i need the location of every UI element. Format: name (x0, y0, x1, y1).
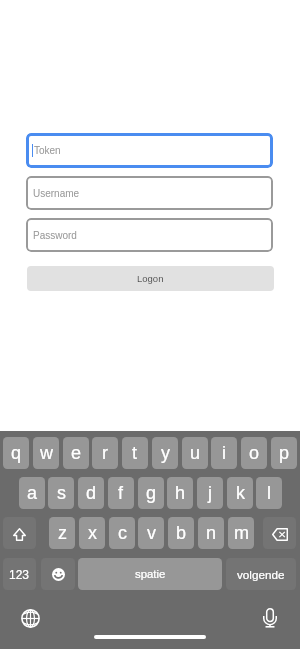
button[interactable]: b (168, 517, 194, 549)
button[interactable]: s (48, 477, 74, 509)
button[interactable]: Token (26, 133, 273, 168)
button[interactable]: y (152, 437, 178, 469)
button[interactable]: a (19, 477, 45, 509)
staticText: f (118, 483, 124, 503)
button[interactable]: Password (26, 218, 273, 252)
staticText: a (27, 483, 38, 503)
button[interactable]: r (92, 437, 118, 469)
staticText: l (267, 483, 271, 503)
staticText: t (132, 443, 138, 463)
button[interactable]: z (49, 517, 75, 549)
button[interactable]: Username (26, 176, 273, 210)
button[interactable]: Emoji (41, 558, 75, 590)
staticText: s (57, 483, 66, 503)
staticText: m (234, 523, 249, 543)
button[interactable]: n (198, 517, 224, 549)
button[interactable]: x (79, 517, 105, 549)
button[interactable]: u (182, 437, 208, 469)
button[interactable]: g (138, 477, 164, 509)
staticText: b (176, 523, 187, 543)
button[interactable]: Backspace (263, 517, 296, 549)
button[interactable]: m (228, 517, 254, 549)
button[interactable]: 123 (3, 558, 36, 590)
staticText: c (118, 523, 127, 543)
button[interactable]: d (78, 477, 104, 509)
button[interactable]: j (197, 477, 223, 509)
button[interactable]: c (109, 517, 135, 549)
button[interactable]: spatie (78, 558, 222, 590)
button[interactable]: h (167, 477, 193, 509)
staticText: i (222, 443, 226, 463)
button[interactable]: Dictate (263, 608, 277, 628)
staticText: z (58, 523, 67, 543)
button[interactable]: o (241, 437, 267, 469)
button[interactable]: p (271, 437, 297, 469)
button[interactable]: volgende (226, 558, 296, 590)
button[interactable]: t (122, 437, 148, 469)
staticText: volgende (237, 568, 285, 581)
staticText: n (206, 523, 217, 543)
staticText: g (146, 483, 157, 503)
staticText: k (236, 483, 245, 503)
staticText: e (71, 443, 82, 463)
staticText: Password (33, 230, 77, 241)
staticText: Token (34, 145, 61, 156)
staticText: x (88, 523, 97, 543)
staticText: v (147, 523, 156, 543)
button[interactable]: Shift (3, 517, 36, 549)
staticText: y (161, 443, 170, 463)
button[interactable]: i (211, 437, 237, 469)
staticText: u (190, 443, 201, 463)
button[interactable]: f (108, 477, 134, 509)
staticText: p (279, 443, 290, 463)
staticText: j (208, 483, 212, 503)
button[interactable]: q (3, 437, 29, 469)
button[interactable]: l (256, 477, 282, 509)
button[interactable]: Logon (27, 266, 274, 291)
button[interactable]: k (227, 477, 253, 509)
staticText: Logon (137, 273, 164, 284)
staticText: r (102, 443, 108, 463)
staticText: h (175, 483, 186, 503)
staticText: q (11, 443, 22, 463)
staticText: Username (33, 188, 80, 199)
staticText: spatie (135, 568, 166, 581)
button[interactable]: Change keyboard (21, 609, 40, 628)
button[interactable]: v (138, 517, 164, 549)
button[interactable]: w (33, 437, 59, 469)
staticText: o (249, 443, 260, 463)
button[interactable]: e (63, 437, 89, 469)
staticText: w (40, 443, 53, 463)
staticText: d (86, 483, 97, 503)
staticText: 123 (9, 568, 30, 581)
